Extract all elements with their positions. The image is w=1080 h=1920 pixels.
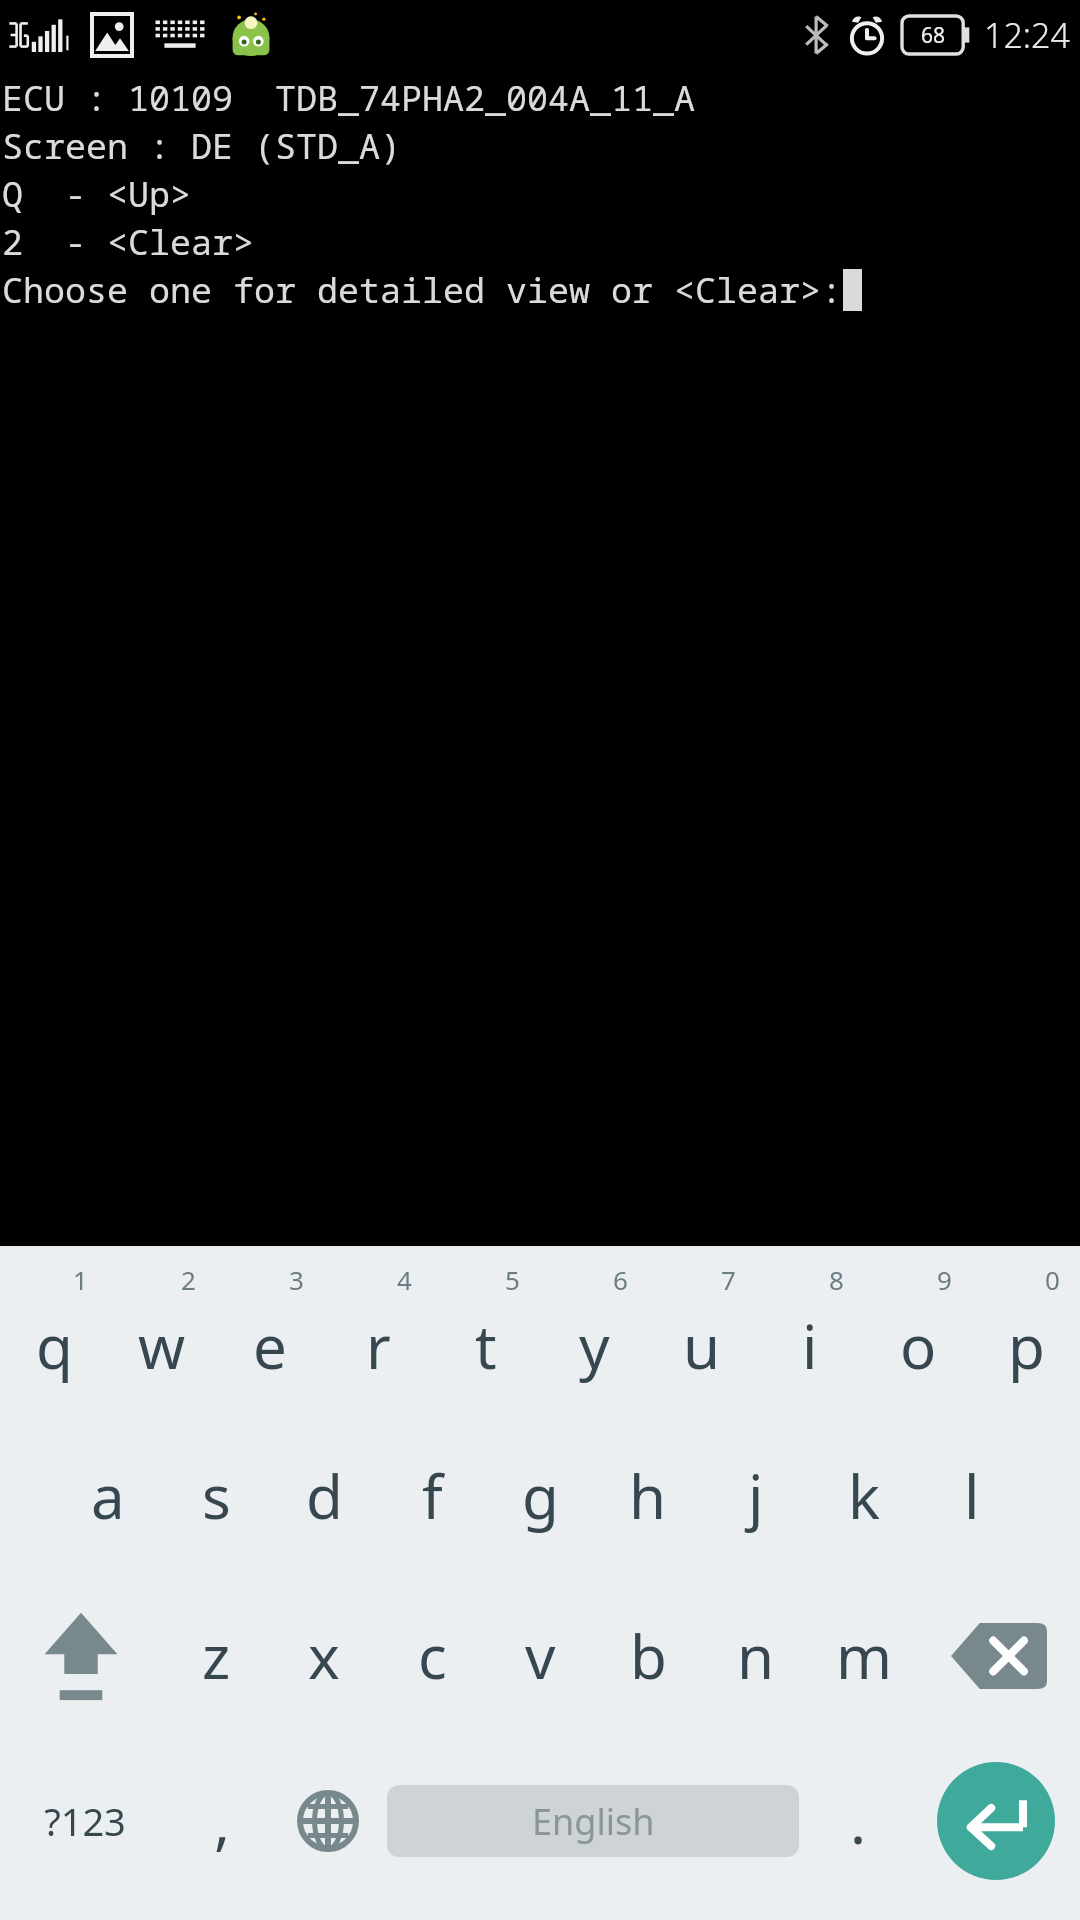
staticText: 3 <box>289 1262 304 1297</box>
button[interactable]: 8 <box>756 1256 864 1416</box>
staticText: r <box>366 1305 391 1387</box>
button[interactable]: k <box>810 1416 918 1576</box>
staticText: , <box>214 1780 231 1862</box>
staticText: w <box>138 1305 186 1387</box>
staticText: . <box>850 1780 867 1862</box>
staticText: i <box>802 1305 818 1387</box>
button[interactable]: f <box>378 1416 486 1576</box>
staticText: e <box>253 1305 287 1387</box>
staticText: g <box>522 1455 559 1537</box>
staticText: 12:24 <box>984 12 1070 58</box>
button[interactable]: h <box>594 1416 702 1576</box>
button[interactable]: 6 <box>540 1256 648 1416</box>
staticText: 68 <box>921 21 946 50</box>
staticText: u <box>683 1305 721 1387</box>
button[interactable]: v <box>486 1576 594 1736</box>
button[interactable]: j <box>702 1416 810 1576</box>
staticText: 2 - <Clear> <box>2 218 255 266</box>
staticText: l <box>964 1455 980 1537</box>
staticText: 9 <box>937 1262 952 1297</box>
button[interactable]: 2 <box>108 1256 216 1416</box>
button[interactable]: 9 <box>864 1256 972 1416</box>
button[interactable]: , <box>169 1736 275 1906</box>
button[interactable]: c <box>378 1576 486 1736</box>
staticText: 4 <box>397 1262 412 1297</box>
staticText: Choose one for detailed view or <Clear>: <box>2 266 843 314</box>
button[interactable]: Shift <box>0 1576 162 1736</box>
button[interactable]: 1 <box>0 1256 108 1416</box>
staticText: t <box>475 1305 497 1387</box>
staticText: x <box>308 1615 340 1697</box>
button[interactable]: x <box>270 1576 378 1736</box>
staticText: 7 <box>721 1262 736 1297</box>
staticText: 0 <box>1045 1262 1060 1297</box>
staticText: a <box>91 1455 125 1537</box>
staticText: b <box>630 1615 667 1697</box>
button[interactable]: 4 <box>324 1256 432 1416</box>
staticText: ?123 <box>44 1795 126 1847</box>
staticText: m <box>836 1615 893 1697</box>
staticText: p <box>1008 1305 1045 1387</box>
button[interactable]: d <box>270 1416 378 1576</box>
staticText: 5 <box>505 1262 520 1297</box>
staticText: v <box>525 1615 556 1697</box>
staticText: j <box>748 1455 764 1537</box>
button[interactable]: Change language <box>275 1736 381 1906</box>
staticText: English <box>532 1797 655 1846</box>
staticText: q <box>36 1305 73 1387</box>
button[interactable]: z <box>162 1576 270 1736</box>
button[interactable]: 7 <box>648 1256 756 1416</box>
staticText: s <box>202 1455 231 1537</box>
staticText: o <box>900 1305 937 1387</box>
button[interactable]: a <box>54 1416 162 1576</box>
staticText: c <box>418 1615 447 1697</box>
staticText: 6 <box>613 1262 628 1297</box>
button[interactable]: m <box>810 1576 918 1736</box>
button[interactable]: l <box>918 1416 1026 1576</box>
staticText: Q - <Up> <box>2 170 192 218</box>
button[interactable]: Backspace <box>918 1576 1080 1736</box>
staticText: h <box>629 1455 667 1537</box>
button[interactable]: g <box>486 1416 594 1576</box>
staticText: z <box>202 1615 231 1697</box>
staticText: ECU : 10109 TDB_74PHA2_004A_11_A <box>2 74 696 122</box>
button[interactable]: ?123 <box>0 1736 169 1906</box>
staticText: 8 <box>829 1262 844 1297</box>
button[interactable]: English <box>387 1785 799 1857</box>
staticText: n <box>737 1615 775 1697</box>
button[interactable]: 5 <box>432 1256 540 1416</box>
staticText: 1 <box>73 1262 88 1297</box>
button[interactable]: b <box>594 1576 702 1736</box>
staticText: Screen : DE (STD_A) <box>2 122 402 170</box>
staticText: f <box>422 1455 443 1537</box>
staticText: y <box>579 1305 610 1387</box>
button[interactable]: 0 <box>972 1256 1080 1416</box>
button[interactable]: s <box>162 1416 270 1576</box>
staticText: k <box>848 1455 881 1537</box>
button[interactable]: 3 <box>216 1256 324 1416</box>
button[interactable]: n <box>702 1576 810 1736</box>
staticText: d <box>306 1455 343 1537</box>
button[interactable]: . <box>805 1736 911 1906</box>
staticText: 2 <box>181 1262 196 1297</box>
button[interactable]: Enter <box>937 1762 1055 1880</box>
